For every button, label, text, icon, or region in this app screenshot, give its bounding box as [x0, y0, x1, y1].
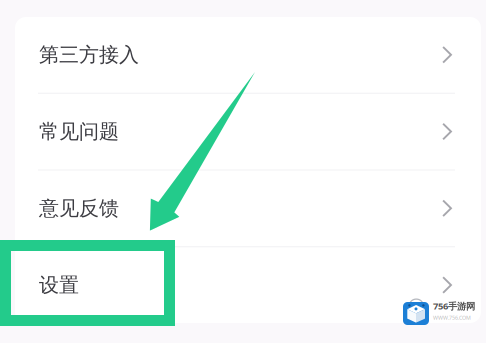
staticText: 设置 — [39, 273, 79, 297]
staticText: 756手游网 — [433, 300, 475, 312]
button[interactable]: 常见问题 — [15, 94, 481, 170]
staticText: 常见问题 — [39, 119, 119, 144]
button[interactable]: 意见反馈 — [15, 170, 481, 246]
button[interactable]: 第三方接入 — [15, 17, 481, 93]
staticText: WWW.756.COM — [433, 314, 471, 321]
staticText: 第三方接入 — [39, 43, 139, 67]
staticText: 意见反馈 — [39, 196, 119, 221]
button[interactable]: 设置 — [15, 247, 481, 323]
